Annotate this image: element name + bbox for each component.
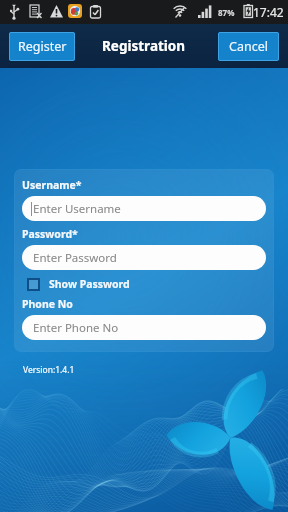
button[interactable]: Cancel bbox=[218, 32, 279, 61]
staticText: Version:1.4.1 bbox=[23, 364, 75, 376]
staticText: Enter Username bbox=[33, 201, 121, 217]
button[interactable]: Register bbox=[9, 32, 75, 61]
staticText: Password* bbox=[22, 227, 78, 241]
staticText: Enter Phone No bbox=[33, 320, 119, 336]
staticText: Registration bbox=[102, 37, 186, 55]
button[interactable]: Enter Password bbox=[22, 245, 266, 270]
staticText: 17:42 bbox=[253, 4, 284, 20]
button[interactable]: Enter Username bbox=[22, 196, 266, 221]
staticText: Enter Password bbox=[33, 250, 117, 266]
staticText: Register bbox=[18, 38, 67, 55]
staticText: Cancel bbox=[229, 38, 268, 55]
staticText: Show Password bbox=[49, 277, 130, 291]
staticText: Username* bbox=[22, 178, 82, 192]
staticText: 87% bbox=[218, 7, 235, 18]
staticText: Phone No bbox=[22, 297, 73, 311]
button[interactable]: Enter Phone No bbox=[22, 315, 266, 340]
button[interactable]: Show Password bbox=[27, 276, 130, 292]
